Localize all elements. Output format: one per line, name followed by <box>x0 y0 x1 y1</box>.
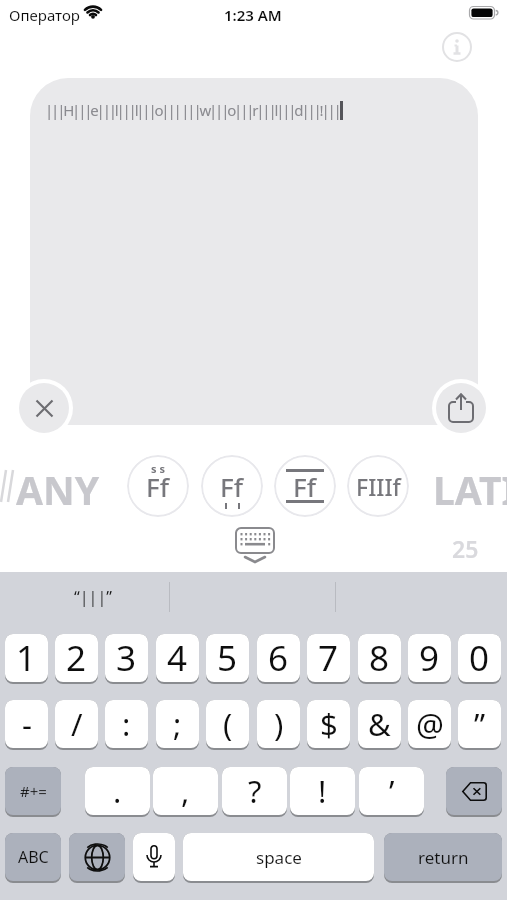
staticText: 25 <box>452 533 479 564</box>
staticText: $ <box>320 703 338 745</box>
staticText: ! <box>318 770 327 812</box>
staticText: ( <box>223 703 233 745</box>
button[interactable] <box>230 524 280 566</box>
button[interactable]: return <box>384 833 502 881</box>
staticText: 2 <box>66 634 87 682</box>
button[interactable]: 1 <box>5 634 48 682</box>
staticText: “|||” <box>74 586 112 608</box>
staticText: 1:23 AM <box>224 5 282 25</box>
staticText: ANY <box>16 463 100 516</box>
button[interactable]: space <box>183 833 374 881</box>
staticText: ; <box>173 703 182 745</box>
button[interactable]: Ff <box>274 455 336 517</box>
button[interactable]: 0 <box>458 634 501 682</box>
staticText: ” <box>474 703 486 745</box>
button[interactable]: $ <box>307 700 350 748</box>
staticText: |||H|||e|||l|||l|||o||| |||w|||o|||r|||l… <box>45 100 340 120</box>
staticText: 0 <box>469 634 490 682</box>
button[interactable]: : <box>105 700 148 748</box>
button[interactable]: @ <box>408 700 451 748</box>
staticText: 6 <box>268 634 289 682</box>
staticText: 4 <box>167 634 188 682</box>
button[interactable]: 3 <box>105 634 148 682</box>
button[interactable]: 8 <box>358 634 401 682</box>
button[interactable] <box>133 833 175 881</box>
button[interactable]: ( <box>206 700 249 748</box>
button[interactable] <box>442 32 472 62</box>
staticText: - <box>22 703 32 745</box>
button[interactable]: - <box>5 700 48 748</box>
staticText: / <box>71 703 83 745</box>
button[interactable]: ? <box>222 767 287 815</box>
staticText: FIIIf <box>356 471 401 502</box>
staticText: 9 <box>419 634 440 682</box>
button[interactable] <box>446 767 502 815</box>
staticText: 7 <box>318 634 339 682</box>
staticText: Ff <box>146 469 170 504</box>
staticText: #+= <box>20 781 47 801</box>
button[interactable]: ABC <box>5 833 61 881</box>
staticText: . <box>113 770 122 812</box>
staticText: , <box>181 770 190 812</box>
staticText: Ff <box>293 469 317 504</box>
button[interactable]: 6 <box>257 634 300 682</box>
button[interactable] <box>432 379 490 437</box>
staticText: 3 <box>116 634 137 682</box>
button[interactable]: ” <box>458 700 501 748</box>
button[interactable]: 4 <box>156 634 199 682</box>
staticText: LATI <box>433 463 507 516</box>
staticText: Оператор <box>9 5 80 25</box>
button[interactable]: ! <box>290 767 355 815</box>
button[interactable]: ) <box>257 700 300 748</box>
button[interactable]: ; <box>156 700 199 748</box>
button[interactable]: 9 <box>408 634 451 682</box>
staticText: @ <box>416 703 444 745</box>
button[interactable]: . <box>85 767 150 815</box>
button[interactable]: |||H|||e|||l|||l|||o||| |||w|||o|||r|||l… <box>30 78 478 425</box>
button[interactable]: 2 <box>55 634 98 682</box>
staticText: ’ <box>389 770 395 812</box>
button[interactable]: FIIIf <box>347 455 409 517</box>
staticText: space <box>256 846 302 869</box>
staticText: : <box>122 703 131 745</box>
staticText: s s <box>151 461 165 476</box>
button[interactable]: ’ <box>359 767 424 815</box>
button[interactable]: & <box>358 700 401 748</box>
staticText: 1 <box>16 634 37 682</box>
button[interactable]: , <box>153 767 218 815</box>
staticText: & <box>368 703 391 745</box>
staticText: ? <box>248 770 262 812</box>
button[interactable]: 7 <box>307 634 350 682</box>
staticText: return <box>418 846 469 869</box>
button[interactable]: / <box>55 700 98 748</box>
staticText: ) <box>274 703 284 745</box>
staticText: 8 <box>369 634 390 682</box>
button[interactable]: “|||” <box>0 578 169 626</box>
button[interactable] <box>15 379 73 437</box>
button[interactable]: Ff <box>201 455 263 517</box>
button[interactable]: Ff <box>127 455 189 517</box>
staticText: Ff <box>220 469 244 504</box>
button[interactable]: #+= <box>5 767 61 815</box>
staticText: 5 <box>217 634 238 682</box>
button[interactable]: 5 <box>206 634 249 682</box>
staticText: ABC <box>18 846 49 868</box>
button[interactable] <box>69 833 125 881</box>
